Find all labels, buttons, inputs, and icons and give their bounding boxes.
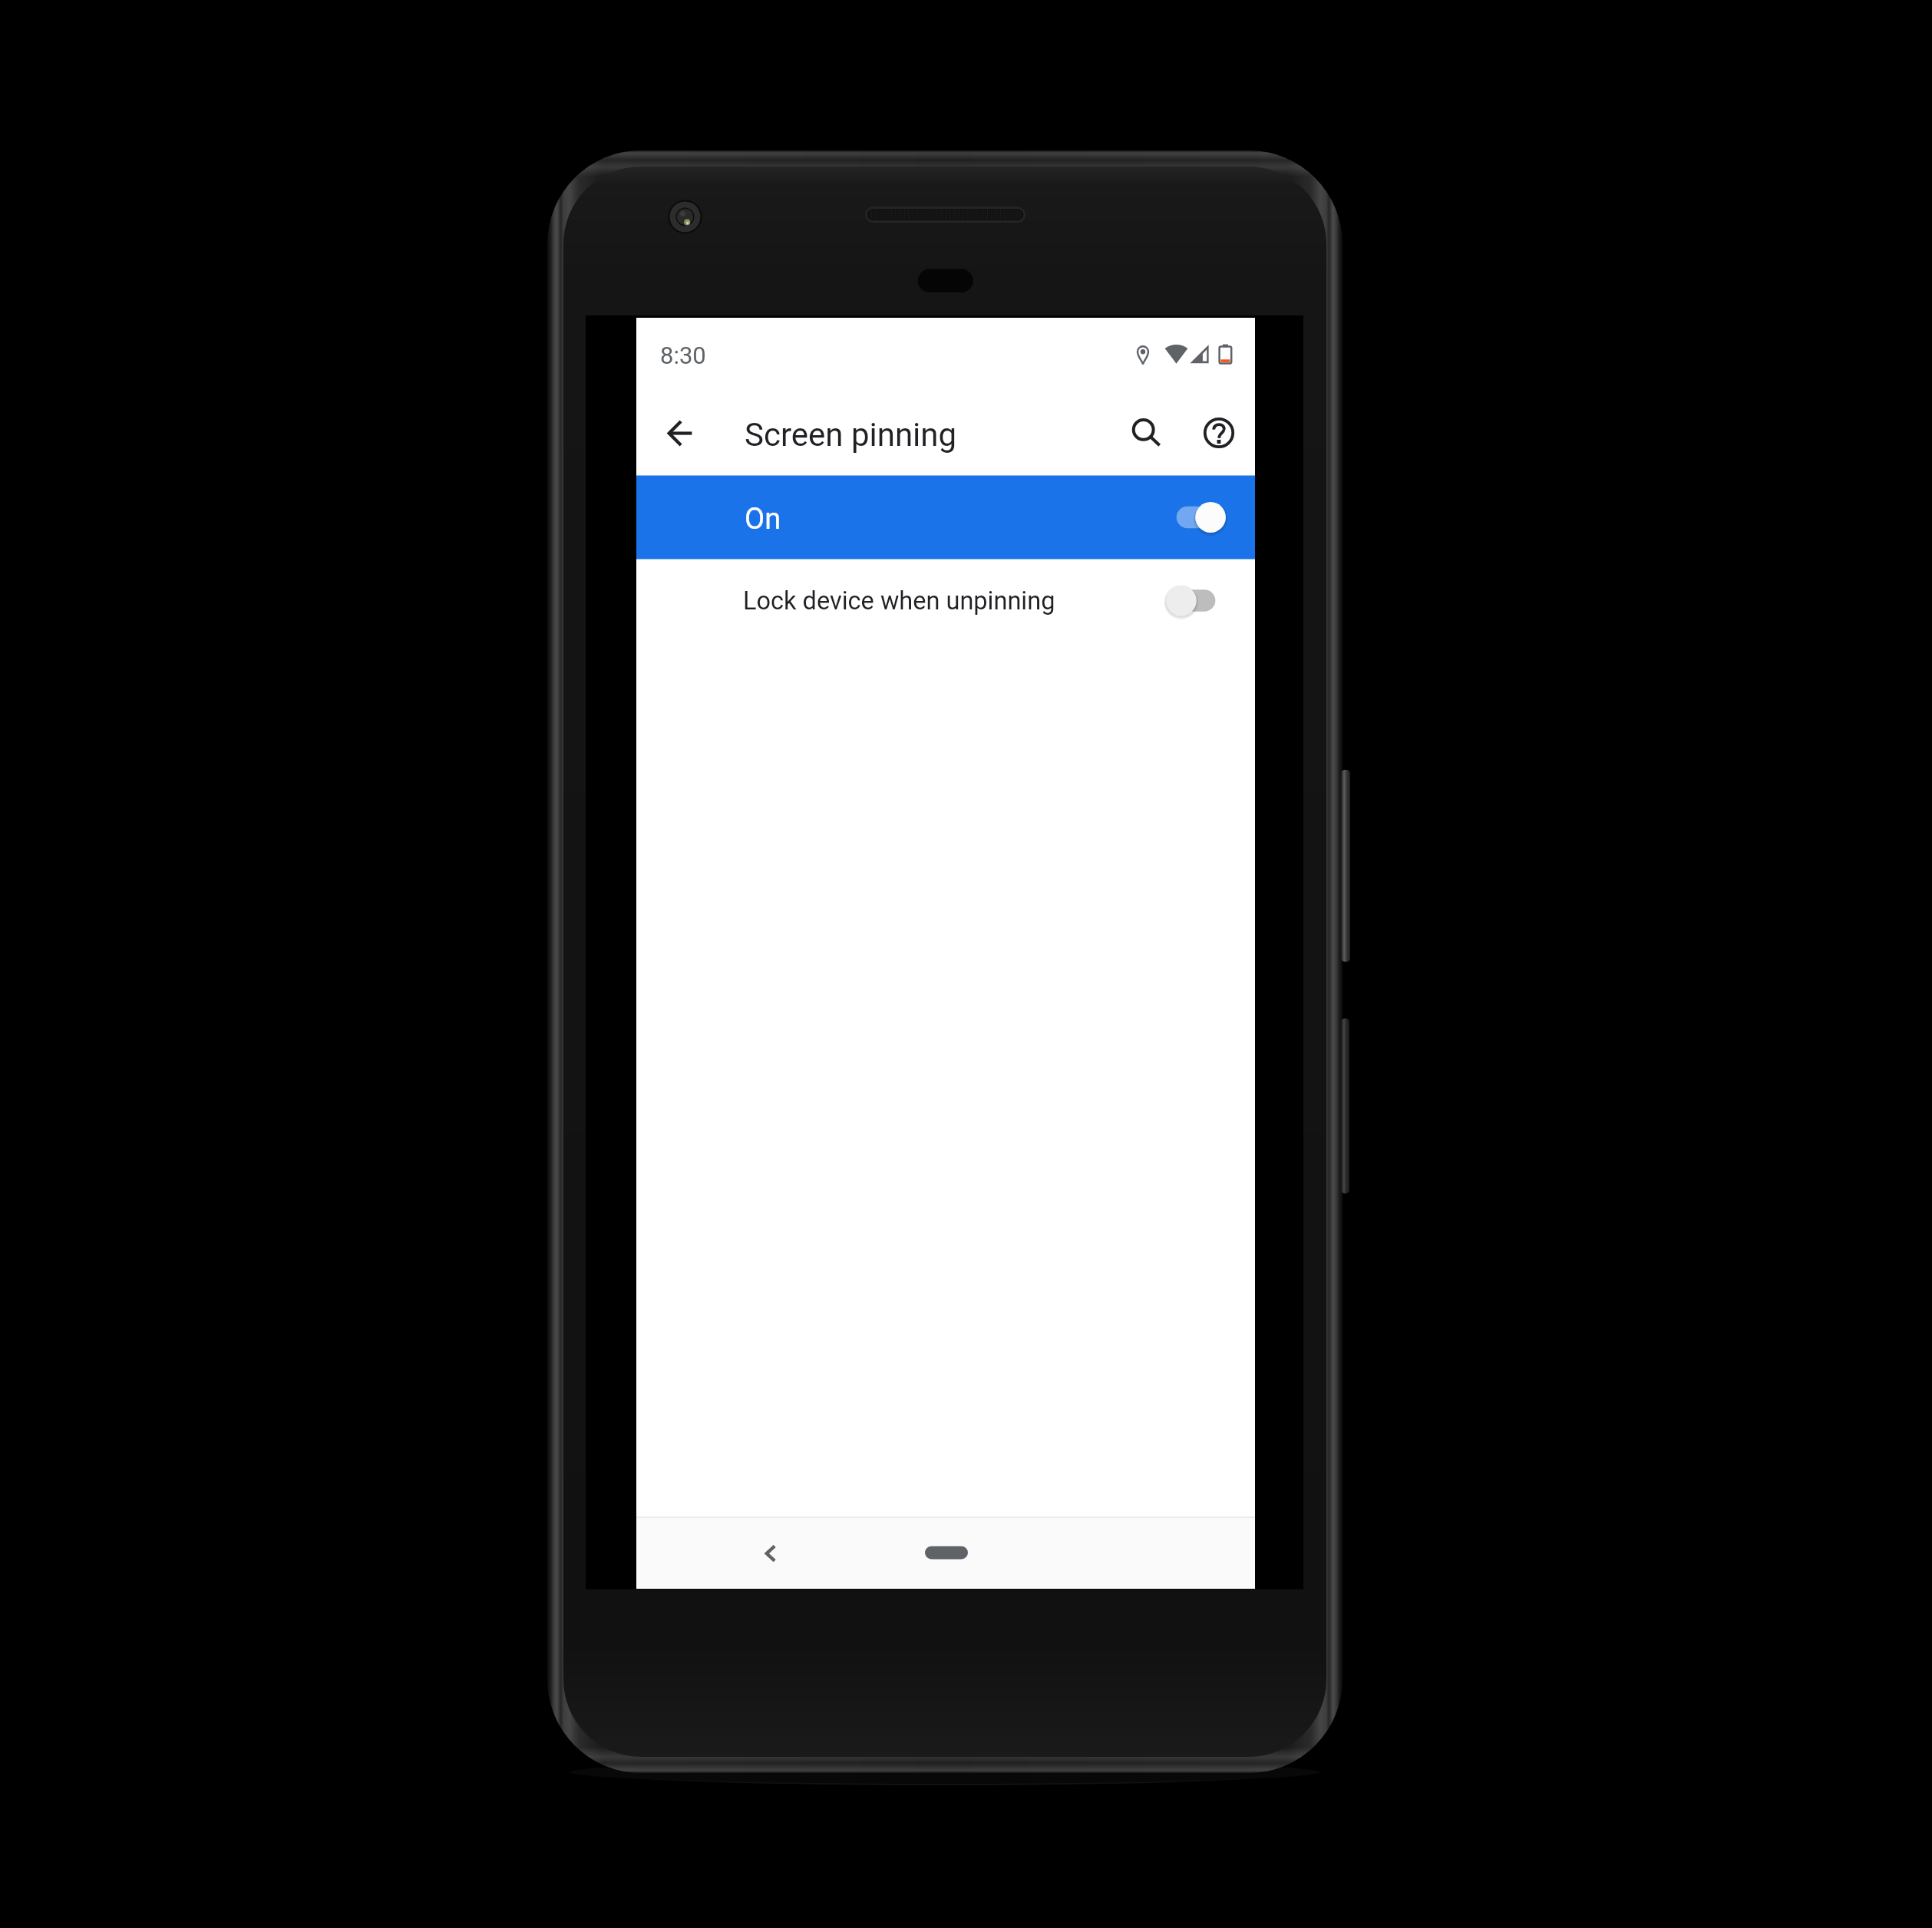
button[interactable]: Search	[1111, 397, 1183, 469]
staticText: Lock device when unpinning	[743, 586, 1055, 616]
button[interactable]: Back	[744, 1527, 798, 1580]
button[interactable]: Help	[1183, 397, 1255, 469]
staticText: 8:30	[660, 342, 706, 369]
button[interactable]: Home	[913, 1531, 980, 1573]
staticText: Screen pinning	[745, 416, 957, 454]
button[interactable]	[636, 560, 1255, 642]
button[interactable]	[636, 476, 1255, 560]
staticText: On	[745, 502, 781, 536]
button[interactable]: Navigate up	[662, 415, 698, 451]
